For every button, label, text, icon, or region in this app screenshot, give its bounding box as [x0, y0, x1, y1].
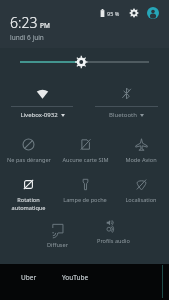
button[interactable]: User account — [146, 6, 160, 20]
staticText: Diffuser — [47, 241, 68, 249]
staticText: Uber — [21, 273, 37, 282]
button[interactable]: 6:23 — [10, 13, 50, 42]
button[interactable]: Settings — [127, 6, 141, 20]
staticText: Mode Avion — [125, 156, 157, 164]
staticText: Lampe de poche — [63, 196, 107, 204]
button[interactable]: Brightness — [0, 52, 169, 72]
button[interactable]: Bluetooth — [84, 81, 169, 125]
button[interactable]: Aucune carte SIM — [57, 133, 113, 173]
button[interactable]: Localisation — [113, 173, 169, 213]
staticText: Localisation — [125, 196, 157, 204]
staticText: Profils audio — [97, 237, 130, 245]
button[interactable]: Mode Avion — [113, 133, 169, 173]
staticText: PM — [40, 21, 50, 30]
button[interactable]: Ne pas déranger — [0, 133, 57, 173]
button[interactable]: Uber — [21, 273, 37, 282]
button[interactable]: Profils audio — [85, 215, 141, 257]
button[interactable]: Diffuser — [29, 215, 85, 257]
staticText: lundi 6 juin — [10, 33, 44, 42]
button[interactable]: YouTube — [62, 273, 89, 282]
staticText: Aucune carte SIM — [62, 156, 109, 164]
button[interactable]: Lampe de poche — [57, 173, 113, 213]
staticText: Rotation automatique — [1, 196, 56, 212]
staticText: 6:23 — [10, 13, 38, 32]
staticText: Bluetooth — [109, 111, 137, 119]
staticText: Ne pas déranger — [7, 156, 51, 164]
button[interactable]: Wi-Fi — [0, 81, 84, 125]
staticText: YouTube — [62, 273, 89, 282]
button[interactable]: Rotation automatique — [0, 173, 57, 213]
staticText: Livebox-0932 — [20, 111, 58, 119]
staticText: 95 % — [107, 10, 120, 17]
